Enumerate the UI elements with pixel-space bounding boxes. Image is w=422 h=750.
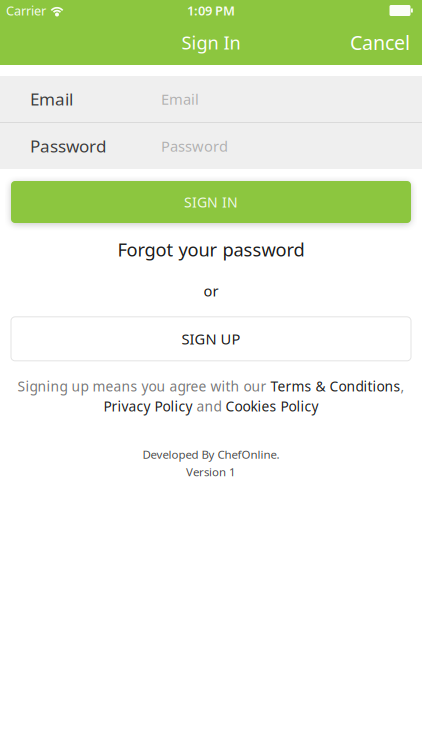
staticText: Signing up means you agree with our (17, 377, 270, 396)
button[interactable]: Forgot your password (105, 232, 316, 267)
button[interactable]: SIGN IN (11, 181, 411, 223)
staticText: Version 1 (186, 464, 236, 480)
staticText: Privacy Policy (103, 397, 192, 415)
staticText: and (192, 397, 225, 415)
staticText: Cancel (350, 29, 410, 56)
staticText: Sign In (181, 30, 240, 55)
staticText: 1:09 PM (187, 2, 235, 19)
staticText: , (400, 377, 404, 396)
staticText: Cookies Policy (225, 397, 318, 415)
button[interactable]: Cancel (340, 21, 420, 64)
staticText: Email (161, 89, 199, 109)
staticText: Forgot your password (117, 237, 304, 262)
button[interactable]: SIGN UP (11, 317, 411, 361)
button[interactable]: Privacy Policy (103, 397, 192, 415)
button[interactable]: Cookies Policy (225, 397, 318, 415)
staticText: or (203, 281, 218, 301)
staticText: Carrier (6, 2, 46, 19)
button[interactable]: Terms & Conditions (270, 377, 400, 396)
staticText: SIGN UP (181, 329, 240, 349)
staticText: Email (30, 87, 73, 111)
staticText: Password (30, 134, 106, 158)
staticText: SIGN IN (184, 192, 238, 212)
staticText: Developed By ChefOnline. (142, 446, 279, 462)
staticText: Terms & Conditions (270, 377, 400, 396)
staticText: Password (161, 136, 228, 156)
